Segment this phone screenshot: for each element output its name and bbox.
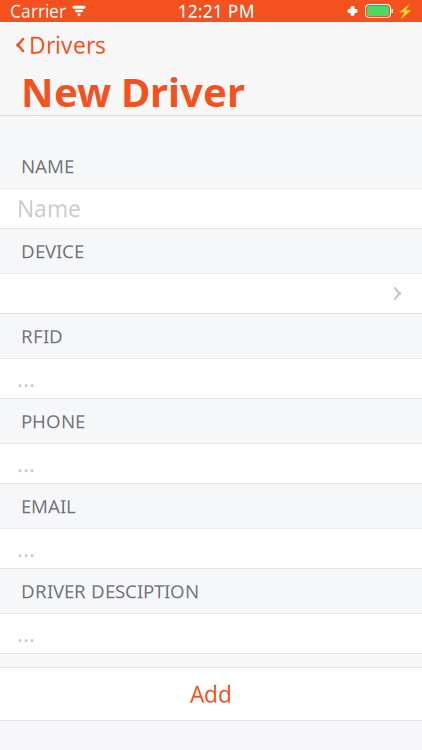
button[interactable]: Drivers bbox=[0, 22, 120, 68]
staticText: Name bbox=[17, 193, 81, 223]
button[interactable]: ... bbox=[0, 359, 422, 399]
staticText: Add bbox=[190, 679, 232, 709]
button[interactable]: Add bbox=[0, 668, 422, 720]
staticText: PHONE bbox=[21, 409, 85, 433]
staticText: EMAIL bbox=[21, 494, 76, 518]
staticText: Carrier bbox=[10, 0, 66, 22]
button[interactable]: ... bbox=[0, 529, 422, 569]
staticText: ... bbox=[17, 533, 35, 563]
staticText: Drivers bbox=[29, 30, 106, 60]
staticText: 12:21 PM bbox=[178, 0, 255, 22]
button[interactable]: ... bbox=[0, 614, 422, 654]
staticText: NAME bbox=[21, 154, 74, 178]
staticText: New Driver bbox=[21, 65, 245, 118]
button[interactable]: ... bbox=[0, 444, 422, 484]
staticText: DRIVER DESCIPTION bbox=[21, 579, 199, 603]
staticText: ⚡ bbox=[397, 3, 414, 19]
staticText: RFID bbox=[21, 324, 63, 348]
staticText: DEVICE bbox=[21, 239, 84, 263]
staticText: ... bbox=[17, 618, 35, 648]
button[interactable]: Name bbox=[0, 189, 422, 229]
button[interactable] bbox=[0, 274, 422, 314]
staticText: ... bbox=[17, 363, 35, 393]
staticText: ... bbox=[17, 448, 35, 478]
